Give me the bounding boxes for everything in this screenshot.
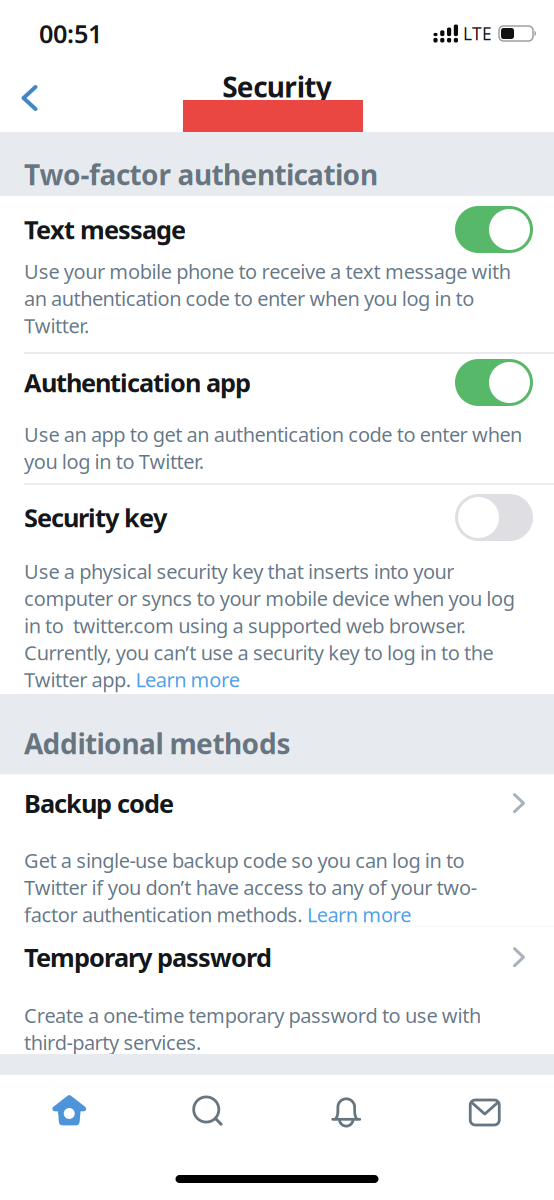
staticText: Create a one-time temporary password to … [24,1002,481,1056]
staticText: Learn more [307,901,411,928]
staticText: Twitter app. [24,666,135,693]
button[interactable]: Notifications [277,1095,415,1129]
staticText: Get a single-use backup code so you can … [24,847,477,901]
staticText: Two-factor authentication [24,156,378,193]
button[interactable]: Text message [455,206,533,253]
button[interactable]: Learn more [307,901,411,928]
staticText: Use a physical security key that inserts… [24,558,515,666]
button[interactable]: Security key [455,494,533,541]
button[interactable]: Learn more [135,666,240,693]
staticText: Authentication app [24,366,251,399]
button[interactable]: Authentication app [455,359,533,406]
staticText: Temporary password [24,940,272,974]
staticText: Learn more [135,666,240,693]
staticText: LTE [463,22,492,45]
staticText: Backup code [24,786,174,820]
button[interactable]: Backup code [0,774,554,928]
button[interactable]: Home [0,1095,138,1129]
button[interactable]: Search [138,1095,277,1129]
button[interactable]: Back [0,55,39,111]
staticText: Text message [24,213,186,246]
staticText: Use an app to get an authentication code… [24,421,522,475]
button[interactable]: Messages [415,1095,554,1129]
staticText: Use your mobile phone to receive a text … [24,258,511,339]
button[interactable]: Temporary password [0,926,554,1056]
staticText: 00:51 [39,17,102,50]
staticText: factor authentication methods. [24,901,307,928]
staticText: Security [222,68,332,105]
staticText: Additional methods [24,725,290,762]
staticText: Security key [24,501,167,534]
